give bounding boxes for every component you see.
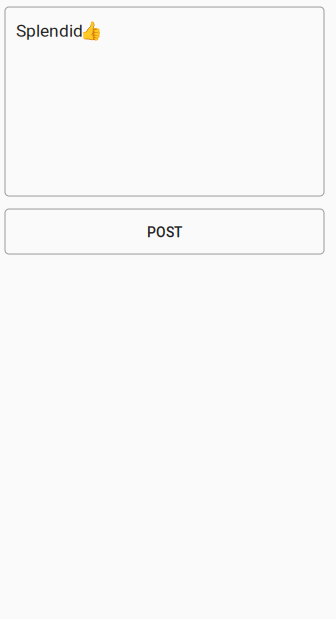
staticText: 👍 [80, 20, 102, 41]
button[interactable]: POST [5, 209, 324, 254]
button[interactable]: Splendid [5, 7, 324, 196]
staticText: Splendid [16, 21, 83, 41]
staticText: POST [147, 224, 182, 241]
